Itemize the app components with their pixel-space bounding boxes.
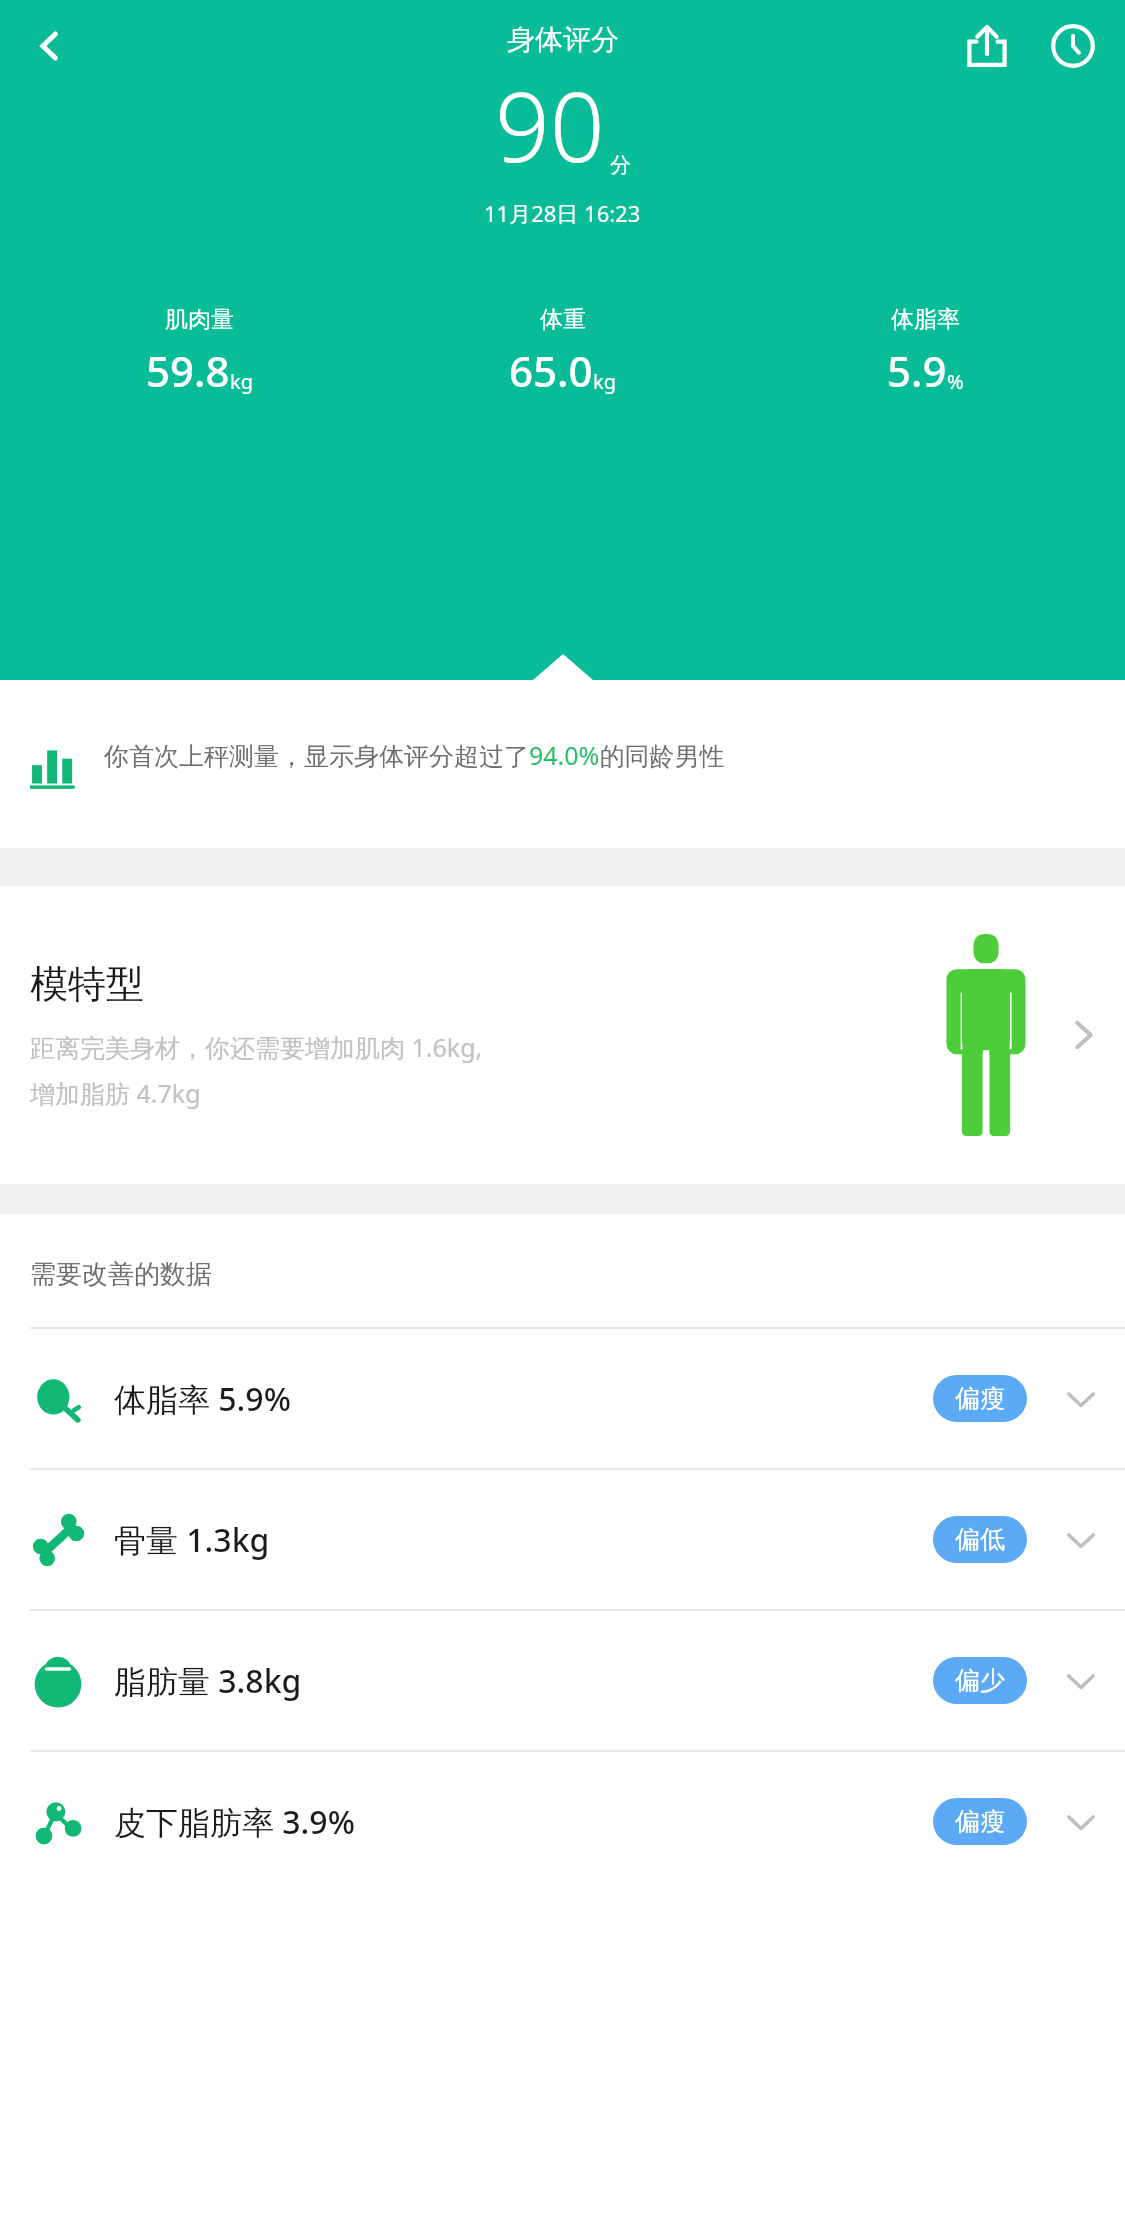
button[interactable]: 骨量 1.3kg <box>0 1470 1125 1609</box>
staticText: 偏瘦 <box>955 1383 1005 1414</box>
button[interactable]: 脂肪量 3.8kg <box>0 1611 1125 1750</box>
staticText: kg <box>230 368 253 395</box>
button[interactable]: History <box>1041 14 1105 78</box>
button[interactable]: 体脂率 5.9% <box>0 1329 1125 1468</box>
staticText: % <box>947 368 964 395</box>
staticText: 5.9 <box>887 342 947 399</box>
staticText: 体脂率 <box>891 305 960 334</box>
staticText: 肌肉量 <box>165 305 234 334</box>
staticText: 需要改善的数据 <box>30 1258 212 1291</box>
staticText: 偏低 <box>955 1524 1005 1555</box>
staticText: 65.0 <box>509 342 593 399</box>
staticText: 脂肪量 3.8kg <box>114 1659 933 1703</box>
staticText: 皮下脂肪率 3.9% <box>114 1800 933 1844</box>
staticText: 59.8 <box>146 342 230 399</box>
staticText: 体重 <box>540 305 586 334</box>
staticText: 骨量 1.3kg <box>114 1518 933 1562</box>
button[interactable]: Back <box>18 14 82 78</box>
staticText: 身体评分 <box>507 22 619 57</box>
staticText: 模特型 <box>30 960 144 1008</box>
staticText: 偏少 <box>955 1665 1005 1696</box>
button[interactable]: Share <box>955 14 1019 78</box>
staticText: 分 <box>610 152 631 178</box>
staticText: 11月28日 16:23 <box>484 198 641 228</box>
staticText: 你首次上秤测量，显示身体评分超过了94.0%的同龄男性 <box>104 738 725 772</box>
staticText: 体脂率 5.9% <box>114 1377 933 1421</box>
staticText: kg <box>593 368 616 395</box>
staticText: 偏瘦 <box>955 1806 1005 1837</box>
staticText: 90 <box>495 59 605 190</box>
staticText: 距离完美身材，你还需要增加肌肉 1.6kg, 增加脂肪 4.7kg <box>30 1030 483 1110</box>
button[interactable]: 皮下脂肪率 3.9% <box>0 1752 1125 1891</box>
button[interactable]: 模特型 <box>0 886 1125 1184</box>
